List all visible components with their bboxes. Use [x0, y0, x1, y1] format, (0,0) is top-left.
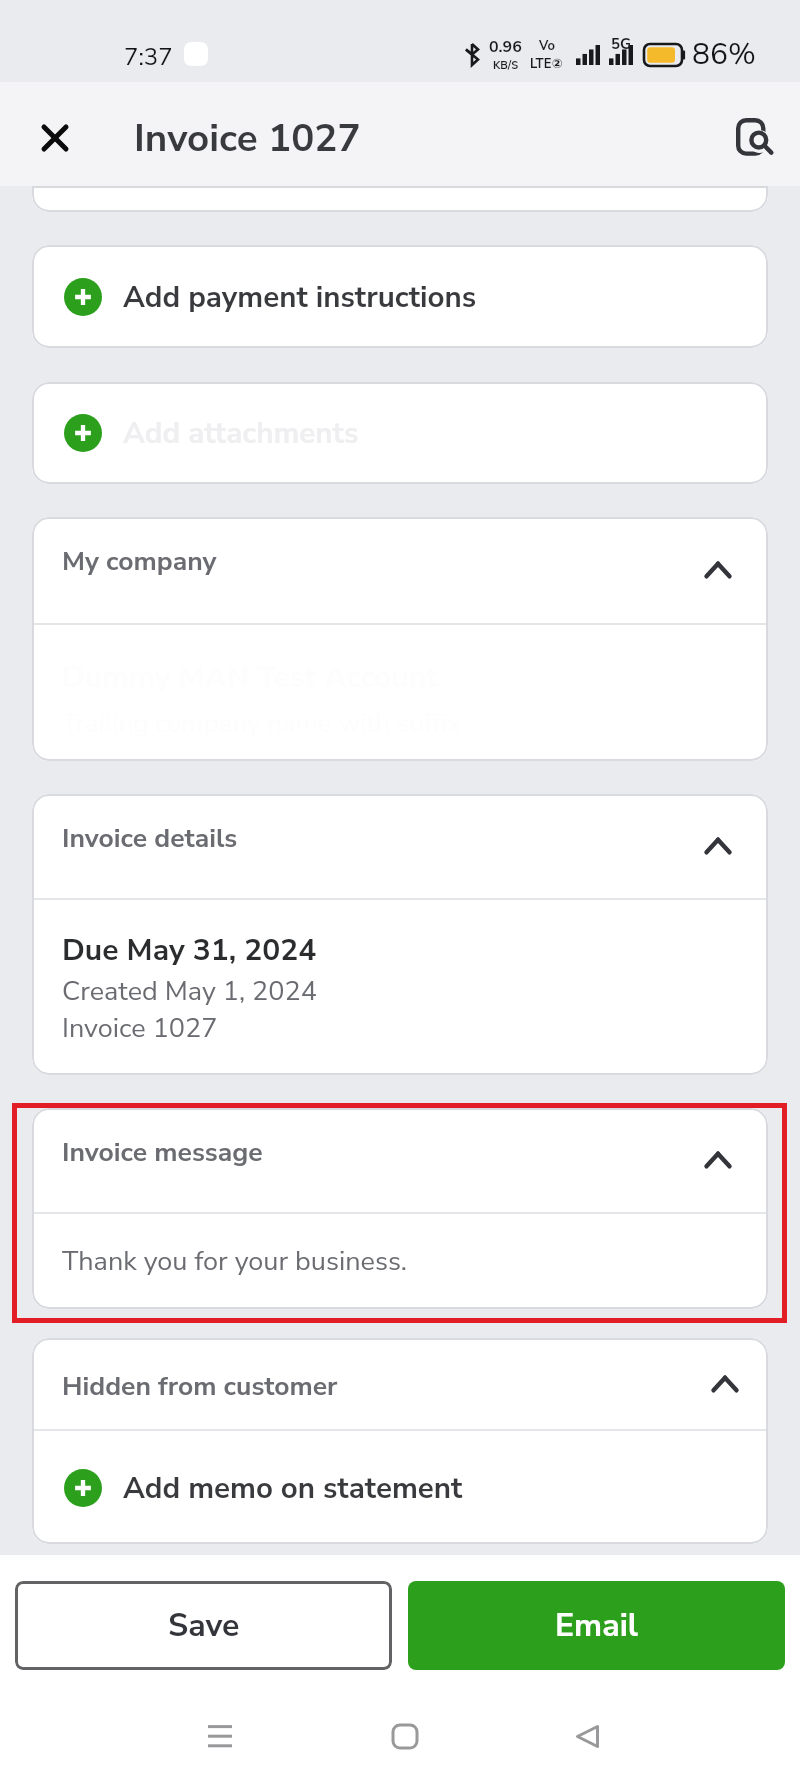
button[interactable]: Email [408, 1581, 785, 1670]
button[interactable]: Invoice details [32, 794, 768, 898]
button[interactable]: Hidden from customer [32, 1338, 768, 1429]
staticText: Vo [539, 37, 555, 55]
staticText: 7:37 [124, 41, 173, 74]
staticText: Add memo on statement [123, 1468, 463, 1508]
staticText: Hidden from customer [62, 1368, 338, 1404]
button[interactable]: Add attachments [32, 382, 768, 484]
staticText: KB/S [493, 58, 519, 73]
staticText: LTE② [530, 55, 563, 73]
staticText: 5G [611, 34, 632, 54]
staticText: Due May 31, 2024 [62, 930, 317, 971]
button[interactable]: My company [32, 517, 768, 623]
button[interactable]: Close [20, 103, 90, 173]
staticText: My company [62, 543, 217, 579]
staticText: 86% [692, 34, 756, 75]
staticText: Invoice message [62, 1134, 263, 1170]
staticText: Thank you for your business. [62, 1243, 407, 1280]
button[interactable]: Back [553, 1702, 621, 1770]
button[interactable]: Home [371, 1702, 439, 1770]
staticText: Invoice 1027 [134, 112, 361, 165]
staticText: 0.96 [489, 36, 522, 58]
button[interactable]: Recent apps [186, 1702, 254, 1770]
staticText: Save [168, 1604, 240, 1648]
staticText: Add attachments [123, 413, 359, 453]
staticText: Invoice details [62, 820, 238, 856]
staticText: Invoice 1027 [62, 1010, 218, 1047]
button[interactable]: Invoice message [32, 1108, 768, 1212]
button[interactable]: Add payment instructions [32, 245, 768, 348]
button[interactable]: Preview invoice [720, 102, 790, 172]
button[interactable]: Save [15, 1581, 392, 1670]
staticText: Created May 1, 2024 [62, 973, 317, 1010]
staticText: Add payment instructions [123, 277, 477, 317]
staticText: Email [555, 1604, 639, 1648]
button[interactable]: Add memo on statement [32, 1431, 768, 1544]
